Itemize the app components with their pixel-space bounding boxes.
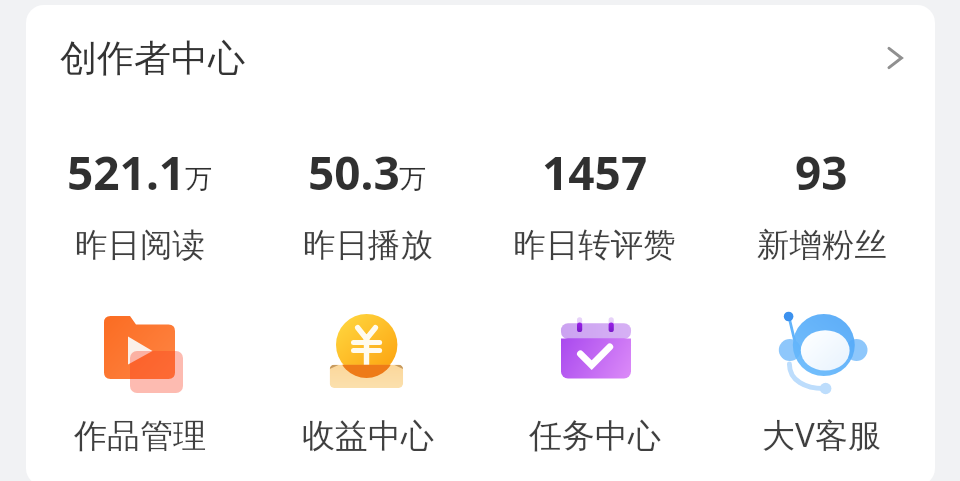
- staticText: 1457: [542, 141, 648, 204]
- button[interactable]: 93: [708, 141, 935, 266]
- staticText: 50.3: [308, 141, 400, 204]
- staticText: 93: [795, 141, 848, 204]
- staticText: 作品管理: [74, 415, 206, 457]
- other: 作品管理: [95, 307, 185, 397]
- button[interactable]: 创作者中心: [26, 5, 935, 111]
- button[interactable]: 任务中心: [481, 307, 708, 457]
- button[interactable]: 进入创作者中心: [869, 35, 915, 81]
- button[interactable]: 50.3: [254, 141, 481, 266]
- button[interactable]: 521.1: [26, 141, 254, 266]
- other: 任务中心: [550, 307, 640, 397]
- staticText: 昨日播放: [303, 225, 433, 266]
- staticText: 521.1: [67, 141, 186, 204]
- staticText: 大V客服: [762, 412, 881, 457]
- staticText: 万: [185, 162, 212, 196]
- other: 大V客服: [777, 307, 867, 397]
- staticText: 新增粉丝: [757, 225, 887, 266]
- button[interactable]: 收益中心: [254, 307, 481, 457]
- staticText: 创作者中心: [60, 35, 245, 82]
- staticText: 任务中心: [529, 415, 661, 457]
- staticText: 昨日阅读: [75, 225, 205, 266]
- staticText: 昨日转评赞: [513, 225, 676, 266]
- staticText: 收益中心: [302, 415, 434, 457]
- staticText: 万: [399, 162, 426, 196]
- button[interactable]: 作品管理: [26, 307, 254, 457]
- button[interactable]: 1457: [481, 141, 708, 266]
- other: 收益中心: [323, 307, 413, 397]
- button[interactable]: 大V客服: [708, 307, 935, 460]
